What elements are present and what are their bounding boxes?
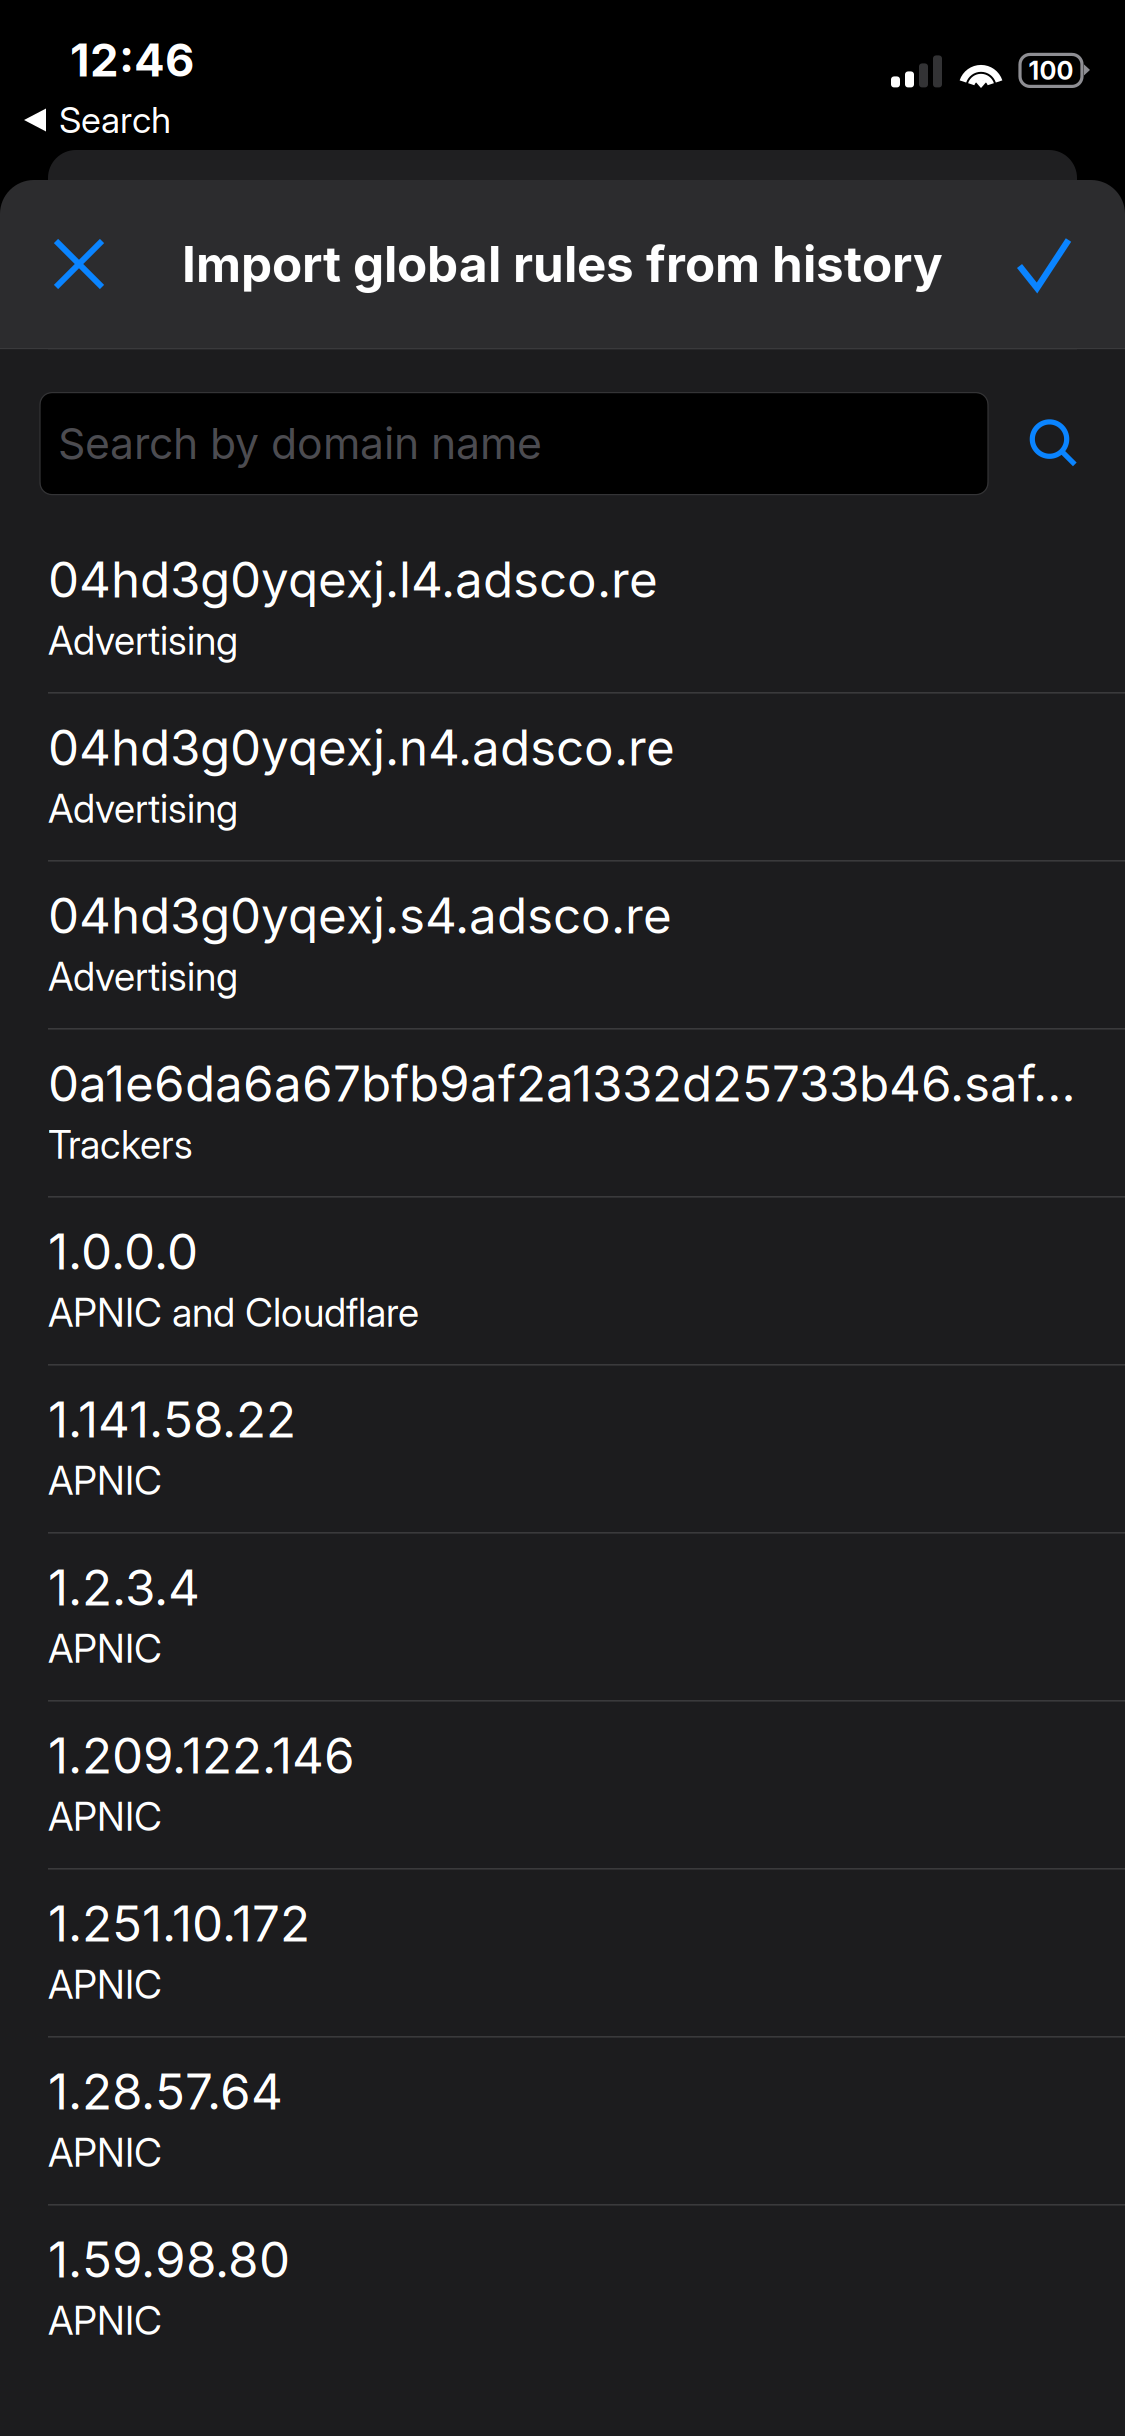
staticText: 1.0.0.0 bbox=[48, 1222, 198, 1281]
staticText: Search by domain name bbox=[58, 418, 542, 469]
staticText: APNIC bbox=[48, 1457, 162, 1504]
staticText: APNIC bbox=[48, 2297, 162, 2344]
staticText: 0a1e6da6a67bfb9af2a1332d25733b46.saf… bbox=[48, 1054, 1076, 1113]
button[interactable]: Done bbox=[963, 180, 1125, 348]
staticText: 1.59.98.80 bbox=[48, 2230, 290, 2289]
staticText: 1.141.58.22 bbox=[48, 1390, 296, 1449]
staticText: Trackers bbox=[48, 1121, 193, 1168]
staticText: 100 bbox=[1028, 55, 1073, 86]
staticText: Import global rules from history bbox=[182, 234, 943, 294]
button[interactable]: 04hd3g0yqexj.l4.adsco.re bbox=[0, 526, 1125, 694]
button[interactable]: 1.141.58.22 bbox=[0, 1366, 1125, 1534]
button[interactable]: 1.251.10.172 bbox=[0, 1870, 1125, 2038]
staticText: APNIC bbox=[48, 1625, 162, 1672]
button[interactable]: 1.2.3.4 bbox=[0, 1534, 1125, 1702]
button[interactable]: 1.28.57.64 bbox=[0, 2038, 1125, 2206]
button[interactable]: 04hd3g0yqexj.n4.adsco.re bbox=[0, 694, 1125, 862]
staticText: 1.209.122.146 bbox=[48, 1726, 355, 1785]
staticText: Advertising bbox=[48, 953, 238, 1000]
button[interactable]: 1.209.122.146 bbox=[0, 1702, 1125, 1870]
staticText: Advertising bbox=[48, 785, 238, 832]
staticText: 1.28.57.64 bbox=[48, 2062, 283, 2121]
staticText: Advertising bbox=[48, 617, 238, 664]
button[interactable]: 1.0.0.0 bbox=[0, 1198, 1125, 1366]
staticText: 12:46 bbox=[70, 33, 194, 87]
staticText: 04hd3g0yqexj.s4.adsco.re bbox=[48, 886, 672, 945]
staticText: 04hd3g0yqexj.n4.adsco.re bbox=[48, 718, 675, 777]
staticText: 1.2.3.4 bbox=[48, 1558, 200, 1617]
button[interactable]: 1.59.98.80 bbox=[0, 2206, 1125, 2374]
staticText: 04hd3g0yqexj.l4.adsco.re bbox=[48, 550, 658, 609]
staticText: APNIC and Cloudflare bbox=[48, 1289, 419, 1336]
staticText: APNIC bbox=[48, 1793, 162, 1840]
staticText: Search bbox=[59, 98, 171, 142]
staticText: APNIC bbox=[48, 1961, 162, 2008]
staticText: APNIC bbox=[48, 2129, 162, 2176]
staticText: 1.251.10.172 bbox=[48, 1894, 310, 1953]
button[interactable]: 04hd3g0yqexj.s4.adsco.re bbox=[0, 862, 1125, 1030]
button[interactable]: Search bbox=[1007, 393, 1101, 495]
button[interactable]: 0a1e6da6a67bfb9af2a1332d25733b46.saf… bbox=[0, 1030, 1125, 1198]
button[interactable]: Close bbox=[0, 180, 158, 348]
